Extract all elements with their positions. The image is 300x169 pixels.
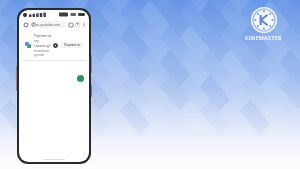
- staticText: Перевести: [64, 43, 80, 47]
- button[interactable]: Action: [77, 75, 84, 82]
- button[interactable]: Tabs: [68, 22, 73, 27]
- staticText: страницу?: [34, 43, 51, 48]
- button[interactable]: Account: [74, 21, 80, 27]
- button[interactable]: More options: [81, 22, 86, 27]
- button[interactable]: Перевести эту: [22, 30, 86, 60]
- button[interactable]: Home: [22, 21, 29, 28]
- staticText: Перевести эту: [34, 33, 52, 43]
- staticText: KINEMASTER: [245, 35, 282, 42]
- button[interactable]: Перевести: [61, 42, 83, 48]
- button[interactable]: ru.youtube.com: [30, 21, 66, 28]
- staticText: ru.youtube.com: [36, 23, 60, 27]
- staticText: английский · русский: [34, 49, 52, 57]
- button[interactable]: Translate settings: [52, 42, 59, 49]
